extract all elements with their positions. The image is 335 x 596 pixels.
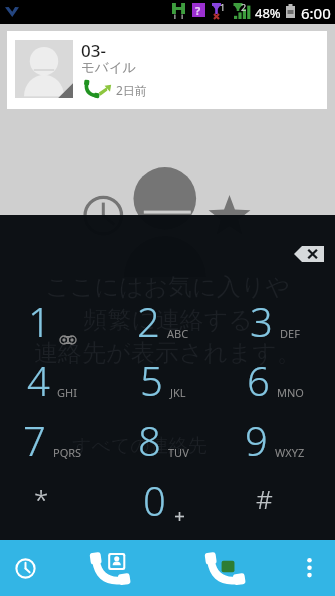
staticText: DEF: [280, 326, 300, 341]
staticText: 1: [28, 294, 51, 348]
staticText: 0: [143, 473, 166, 527]
button[interactable]: Backspace: [294, 246, 324, 262]
staticText: 5: [140, 353, 163, 407]
button[interactable]: Contacts: [62, 540, 158, 596]
staticText: 2日前: [116, 82, 147, 98]
button[interactable]: 6: [219, 350, 331, 410]
button[interactable]: 3: [219, 291, 331, 351]
staticText: モバイル: [81, 59, 137, 76]
staticText: TUV: [168, 445, 189, 460]
button[interactable]: 8: [107, 410, 219, 470]
button[interactable]: 1: [0, 291, 108, 351]
staticText: 9: [245, 413, 268, 467]
staticText: ?: [195, 3, 201, 18]
staticText: 8: [138, 413, 161, 467]
staticText: 7: [23, 413, 46, 467]
button[interactable]: More options: [292, 540, 327, 596]
staticText: 6:00: [301, 3, 331, 23]
staticText: 2: [137, 294, 160, 348]
staticText: PQRS: [53, 445, 82, 460]
button[interactable]: 5: [107, 350, 219, 410]
button[interactable]: Call log: [177, 540, 273, 596]
staticText: 頻繁に連絡する: [83, 305, 253, 335]
button[interactable]: 03-: [7, 31, 327, 109]
button[interactable]: 9: [219, 410, 331, 470]
staticText: ここにはお気に入りや: [45, 272, 290, 302]
staticText: #: [256, 481, 273, 516]
staticText: MNO: [277, 385, 304, 400]
staticText: すべての連絡先: [72, 434, 207, 458]
button[interactable]: 2: [107, 291, 219, 351]
staticText: 1: [220, 1, 226, 13]
staticText: 6: [247, 353, 270, 407]
staticText: WXYZ: [275, 445, 305, 460]
staticText: 4: [27, 353, 50, 407]
staticText: 03-: [81, 39, 106, 62]
staticText: GHI: [57, 385, 77, 400]
staticText: 3: [250, 294, 273, 348]
staticText: 48%: [255, 4, 281, 22]
button[interactable]: Recents: [0, 540, 51, 596]
staticText: *: [34, 481, 49, 516]
staticText: JKL: [170, 385, 186, 400]
button[interactable]: 4: [0, 350, 108, 410]
button[interactable]: #: [219, 470, 331, 530]
staticText: 連絡先が表示されます。: [34, 338, 301, 368]
button[interactable]: 7: [0, 410, 108, 470]
staticText: ABC: [167, 326, 189, 341]
button[interactable]: *: [0, 470, 108, 530]
button[interactable]: 0: [107, 470, 219, 530]
staticText: 2: [241, 1, 247, 13]
